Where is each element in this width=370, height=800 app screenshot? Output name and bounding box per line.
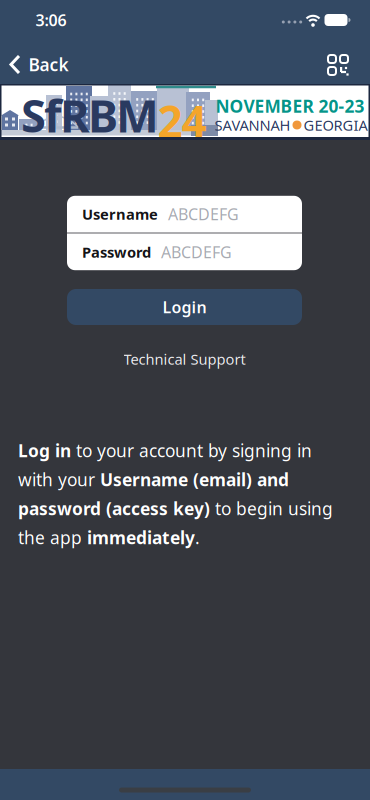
staticText: immediately xyxy=(87,526,195,549)
staticText: NOVEMBER 20-23 xyxy=(215,94,364,117)
staticText: GEORGIA xyxy=(303,115,367,135)
staticText: 24 xyxy=(157,92,206,150)
staticText: 3:06 xyxy=(35,9,66,31)
staticText: Password xyxy=(82,242,151,262)
staticText: to begin using xyxy=(210,497,333,520)
button[interactable]: Username xyxy=(67,196,302,232)
staticText: Username (email) and xyxy=(100,468,289,491)
button[interactable]: Technical Support xyxy=(123,349,245,369)
staticText: Login xyxy=(162,296,206,318)
staticText: SAVANNAH xyxy=(214,115,290,135)
staticText: Back xyxy=(28,53,68,76)
staticText: . xyxy=(195,526,200,549)
button[interactable]: Scan QR Code xyxy=(327,54,348,75)
button[interactable]: Login xyxy=(67,289,302,325)
staticText: Technical Support xyxy=(123,349,245,369)
staticText: SfRBM xyxy=(21,85,159,145)
staticText: ABCDEFG xyxy=(168,203,239,225)
staticText: ABCDEFG xyxy=(161,241,232,262)
button[interactable]: Back xyxy=(9,53,68,76)
staticText: Username xyxy=(82,204,158,224)
staticText: to your account by signing in xyxy=(71,439,312,462)
staticText: with your xyxy=(18,468,100,491)
button[interactable]: Password xyxy=(67,234,302,270)
staticText: password (access key) xyxy=(18,497,210,520)
staticText: Log in xyxy=(18,439,71,462)
staticText: the app xyxy=(18,526,87,549)
